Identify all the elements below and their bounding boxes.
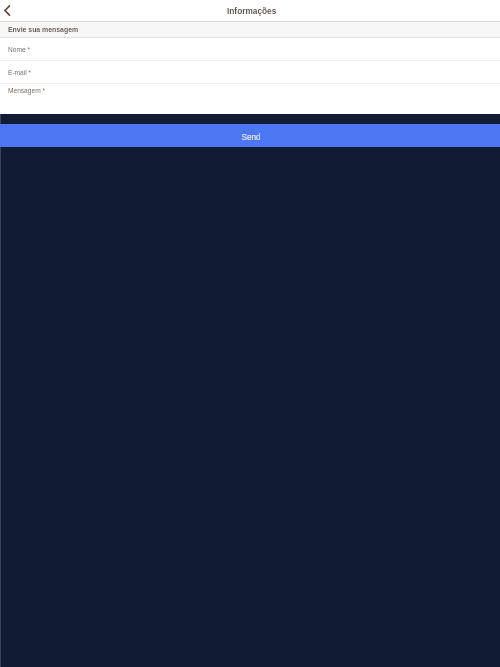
staticText: Send [241,133,261,142]
staticText: Envie sua mensagem [8,26,79,34]
button[interactable]: Envie sua mensagem [0,22,500,37]
staticText: Mensagem * [8,87,46,94]
button[interactable]: E-mail * [0,61,500,83]
button[interactable]: Nome * [0,38,500,60]
button[interactable]: Mensagem * [0,84,500,114]
staticText: Informações [227,6,277,15]
staticText: E-mail * [8,69,32,76]
button[interactable]: Back [0,0,21,21]
button[interactable]: Send [0,124,500,147]
staticText: Nome * [8,46,30,53]
